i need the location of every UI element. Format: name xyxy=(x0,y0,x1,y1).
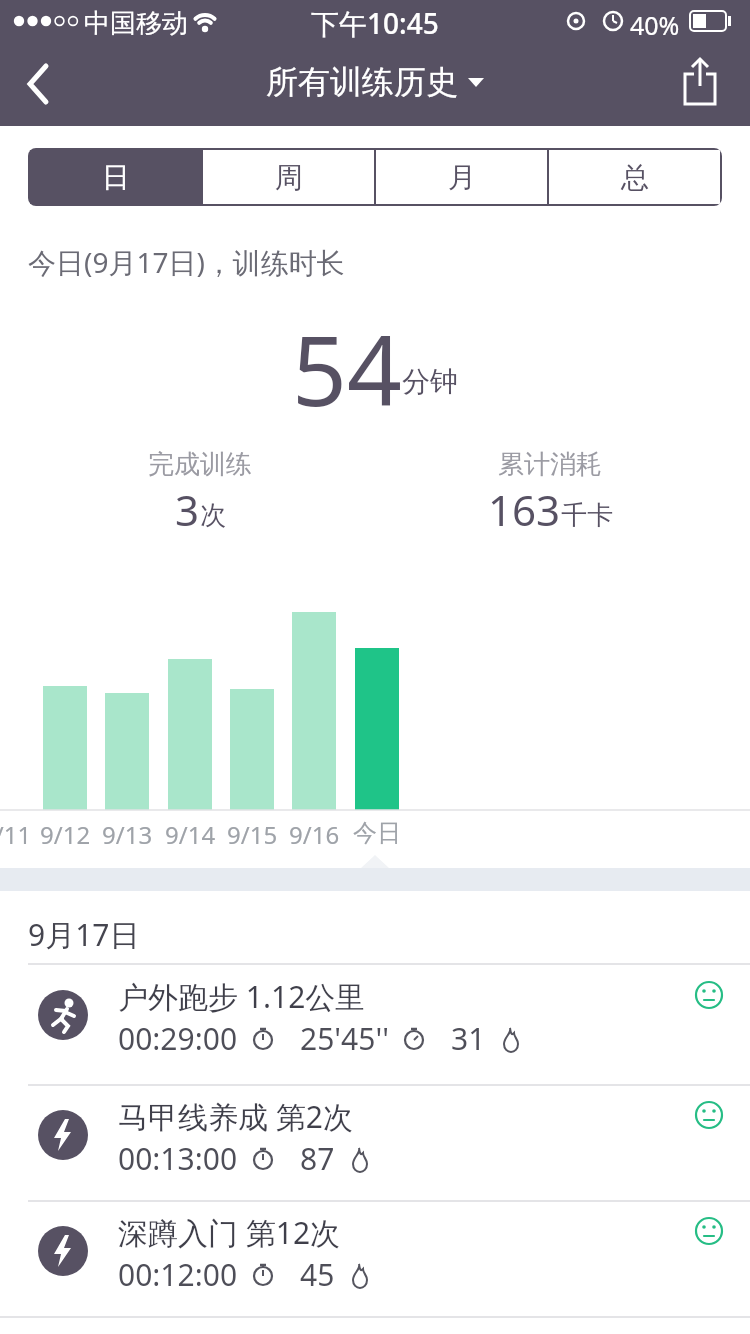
staticText: 9月17日 xyxy=(28,914,140,955)
button[interactable]: 周 xyxy=(203,150,374,204)
staticText: 54 xyxy=(292,303,402,413)
staticText: 45 xyxy=(300,1254,335,1295)
staticText: 累计消耗 xyxy=(498,448,602,481)
staticText: 87 xyxy=(300,1138,335,1179)
staticText: 分钟 xyxy=(402,364,458,399)
staticText: 9/11 xyxy=(0,818,32,851)
staticText: 深蹲入门 第12次 xyxy=(118,1212,341,1253)
staticText: 00:29:00 xyxy=(118,1018,238,1059)
staticText: 千卡 xyxy=(561,499,613,532)
button[interactable]: 月 xyxy=(376,150,547,204)
staticText: 00:12:00 xyxy=(118,1254,238,1295)
staticText: 31 xyxy=(451,1018,486,1059)
staticText: 今日(9月17日)，训练时长 xyxy=(28,243,345,281)
staticText: 9/14 xyxy=(165,818,216,851)
button[interactable]: 所有训练历史 xyxy=(0,52,750,112)
button[interactable] xyxy=(10,52,74,116)
button[interactable] xyxy=(672,52,732,116)
staticText: 25'45'' xyxy=(300,1018,389,1059)
staticText: 今日 xyxy=(353,818,401,848)
staticText: 9/15 xyxy=(227,818,278,851)
staticText: 次 xyxy=(200,499,226,532)
staticText: 马甲线养成 第2次 xyxy=(118,1096,353,1137)
button[interactable]: 深蹲入门 第12次 xyxy=(0,1202,750,1318)
staticText: 周 xyxy=(275,160,303,195)
button[interactable]: 户外跑步 1.12公里 xyxy=(0,966,750,1082)
staticText: 日 xyxy=(102,160,130,195)
staticText: 所有训练历史 xyxy=(266,62,458,102)
staticText: 户外跑步 1.12公里 xyxy=(118,976,366,1017)
staticText: 月 xyxy=(448,160,476,195)
staticText: 9/13 xyxy=(102,818,153,851)
staticText: 中国移动 xyxy=(84,7,188,40)
staticText: 9/12 xyxy=(40,818,91,851)
staticText: 下午10:45 xyxy=(311,4,439,42)
button[interactable]: 日 xyxy=(30,150,201,204)
staticText: 3 xyxy=(175,481,200,538)
staticText: 完成训练 xyxy=(148,448,252,481)
staticText: 40% xyxy=(630,8,680,42)
staticText: 总 xyxy=(621,160,649,195)
staticText: 163 xyxy=(488,481,561,538)
staticText: 00:13:00 xyxy=(118,1138,238,1179)
button[interactable]: 马甲线养成 第2次 xyxy=(0,1086,750,1202)
staticText: 9/16 xyxy=(289,818,340,851)
button[interactable]: 总 xyxy=(549,150,720,204)
